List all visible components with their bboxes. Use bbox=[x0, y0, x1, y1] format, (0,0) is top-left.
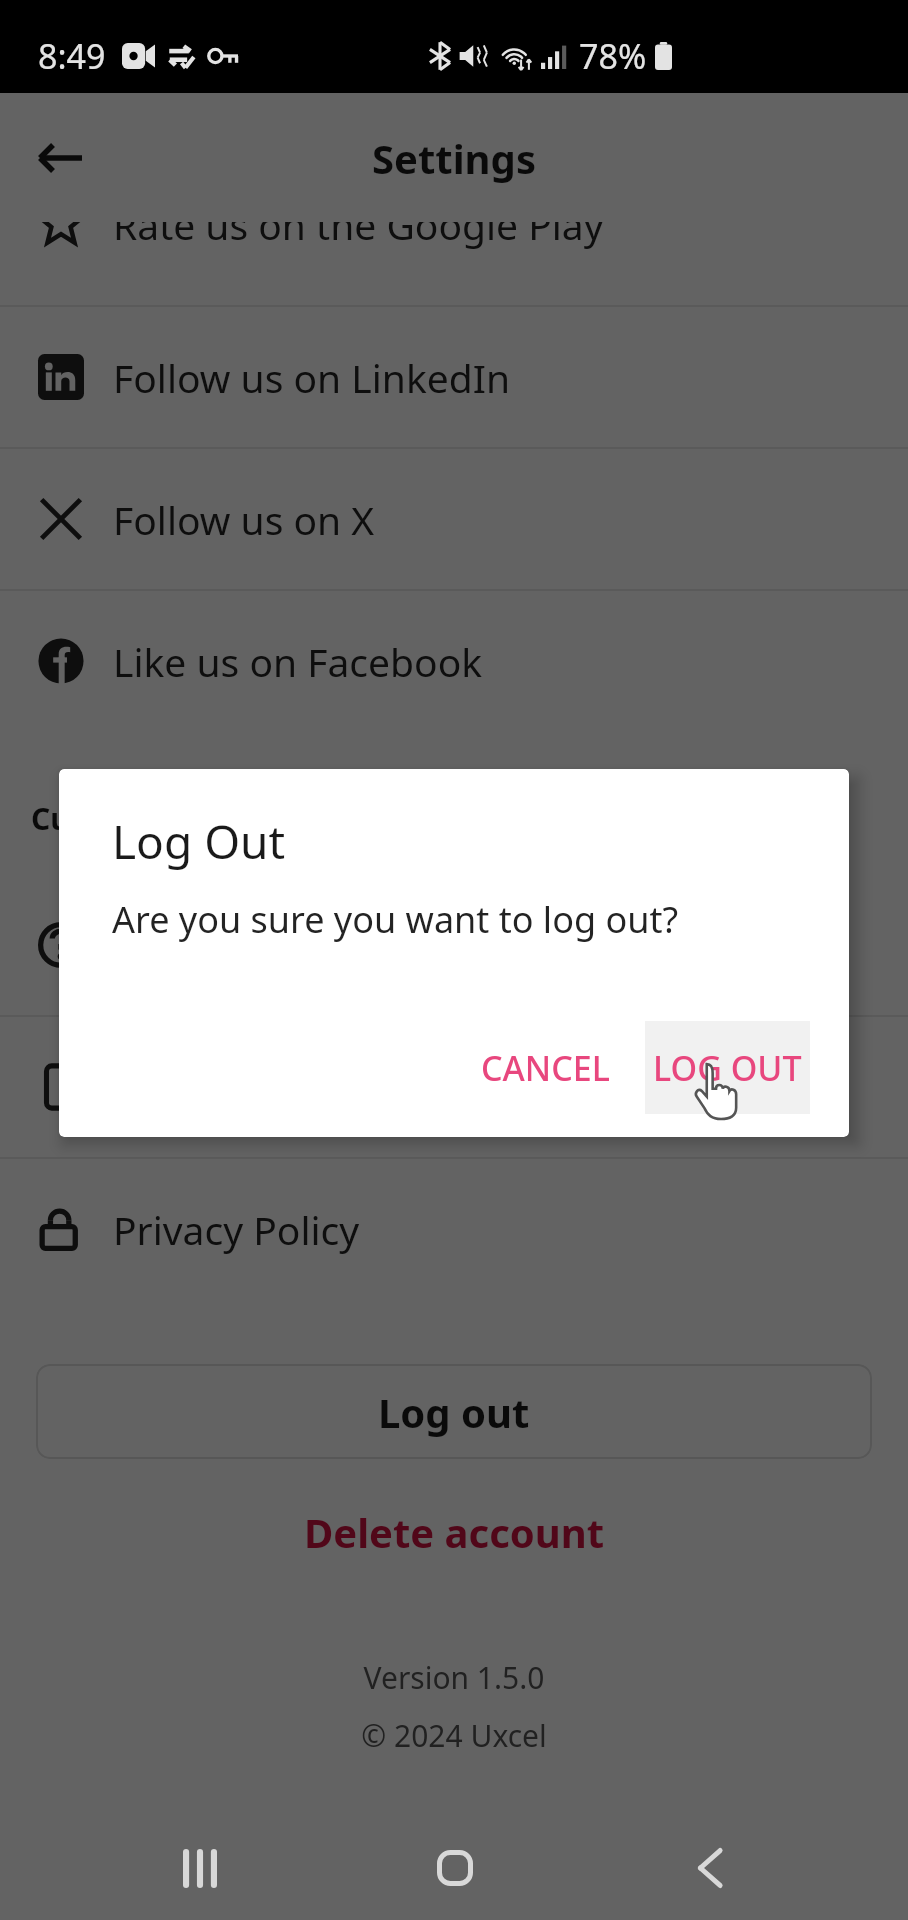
button[interactable]: Contact us bbox=[0, 875, 908, 1015]
button[interactable]: Back bbox=[670, 1828, 750, 1908]
staticText: Are you sure you want to log out? bbox=[112, 895, 679, 944]
staticText: Log out bbox=[378, 1385, 530, 1439]
button[interactable]: Follow us on LinkedIn bbox=[0, 307, 908, 447]
button[interactable]: Rate us on the Google Play bbox=[0, 222, 908, 294]
staticText: Log Out bbox=[112, 810, 286, 873]
button[interactable]: Delete account bbox=[0, 1487, 908, 1577]
staticText: CANCEL bbox=[481, 1045, 610, 1091]
button[interactable]: Privacy Policy bbox=[0, 1159, 908, 1299]
staticText: LOG OUT bbox=[653, 1045, 802, 1091]
button[interactable]: Follow us on X bbox=[0, 449, 908, 589]
staticText: Privacy Policy bbox=[113, 1203, 360, 1256]
button[interactable]: Terms of Service bbox=[0, 1017, 908, 1157]
button[interactable]: Like us on Facebook bbox=[0, 591, 908, 731]
button[interactable]: Recent apps bbox=[160, 1828, 240, 1908]
staticText: Delete account bbox=[304, 1505, 605, 1559]
staticText: Settings bbox=[372, 131, 536, 185]
staticText: Version 1.5.0 bbox=[0, 1657, 908, 1698]
staticText: 8:49 bbox=[38, 33, 106, 79]
button[interactable]: CANCEL bbox=[451, 1021, 640, 1114]
staticText: Like us on Facebook bbox=[113, 635, 483, 688]
button[interactable]: Back bbox=[19, 116, 103, 200]
staticText: Rate us on the Google Play bbox=[113, 222, 604, 251]
button[interactable]: Home bbox=[415, 1828, 495, 1908]
button[interactable]: Log out bbox=[36, 1364, 872, 1459]
staticText: Contact us bbox=[113, 919, 308, 972]
staticText: © 2024 Uxcel bbox=[0, 1715, 908, 1756]
staticText: Customer support bbox=[31, 798, 303, 839]
staticText: Follow us on LinkedIn bbox=[113, 351, 511, 404]
staticText: Follow us on X bbox=[113, 493, 375, 546]
staticText: 78% bbox=[579, 33, 647, 79]
button[interactable]: LOG OUT bbox=[645, 1021, 810, 1114]
